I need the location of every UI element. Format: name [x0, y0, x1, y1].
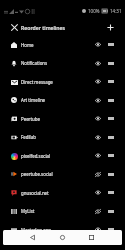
button[interactable]: Peertube — [0, 109, 125, 128]
button[interactable]: Back — [26, 231, 39, 244]
button[interactable]: Toggle visibility — [91, 38, 104, 51]
button[interactable]: Art timeline — [0, 91, 125, 109]
button[interactable]: MyList — [0, 202, 125, 220]
button[interactable]: Toggle visibility — [91, 75, 104, 88]
button[interactable]: Direct message — [0, 72, 125, 91]
staticText: Art timeline — [21, 97, 46, 103]
staticText: gnusocial.net — [21, 190, 49, 196]
button[interactable]: Reorder — [104, 94, 117, 107]
staticText: Peertube — [21, 116, 40, 122]
button[interactable]: Toggle visibility — [91, 149, 104, 162]
button[interactable]: Recent apps — [85, 231, 98, 244]
button[interactable]: Notifications — [0, 54, 125, 72]
button[interactable]: Home — [0, 35, 125, 54]
button[interactable]: Home — [56, 231, 69, 244]
button[interactable]: Toggle visibility — [91, 131, 104, 144]
button[interactable]: pixelfed.social — [0, 146, 125, 165]
button[interactable]: Reorder — [104, 205, 117, 218]
button[interactable]: Reorder — [104, 131, 117, 144]
button[interactable]: Fedilab — [0, 128, 125, 146]
button[interactable]: Reorder — [104, 168, 117, 181]
button[interactable]: Reorder — [104, 223, 117, 236]
button[interactable]: Toggle visibility — [91, 223, 104, 236]
button[interactable]: Toggle visibility — [91, 186, 104, 199]
staticText: Fedilab — [21, 134, 36, 140]
staticText: pixelfed.social — [21, 153, 51, 159]
button[interactable]: Add — [103, 20, 118, 35]
button[interactable]: Toggle visibility — [91, 112, 104, 125]
staticText: Mastodon app — [21, 227, 51, 233]
button[interactable]: Toggle visibility — [91, 57, 104, 70]
button[interactable]: Toggle visibility — [91, 205, 104, 218]
staticText: Direct message — [21, 79, 53, 85]
button[interactable]: Reorder — [104, 149, 117, 162]
button[interactable]: Toggle visibility — [91, 168, 104, 181]
button[interactable]: peertube.social — [0, 165, 125, 183]
staticText: Home — [21, 42, 34, 48]
button[interactable]: Reorder — [104, 38, 117, 51]
button[interactable]: gnusocial.net — [0, 183, 125, 202]
staticText: MyList — [21, 208, 35, 214]
button[interactable]: Reorder — [104, 57, 117, 70]
staticText: Notifications — [21, 60, 48, 66]
button[interactable]: Reorder — [104, 186, 117, 199]
button[interactable]: Close — [7, 20, 22, 35]
staticText: Reorder timelines — [21, 24, 66, 31]
staticText: 100% — [88, 8, 100, 14]
staticText: peertube.social — [21, 171, 53, 177]
button[interactable]: Reorder — [104, 112, 117, 125]
button[interactable]: Mastodon app — [0, 220, 125, 239]
button[interactable]: Reorder — [104, 75, 117, 88]
staticText: 14:31 — [110, 8, 122, 14]
button[interactable]: Toggle visibility — [91, 94, 104, 107]
